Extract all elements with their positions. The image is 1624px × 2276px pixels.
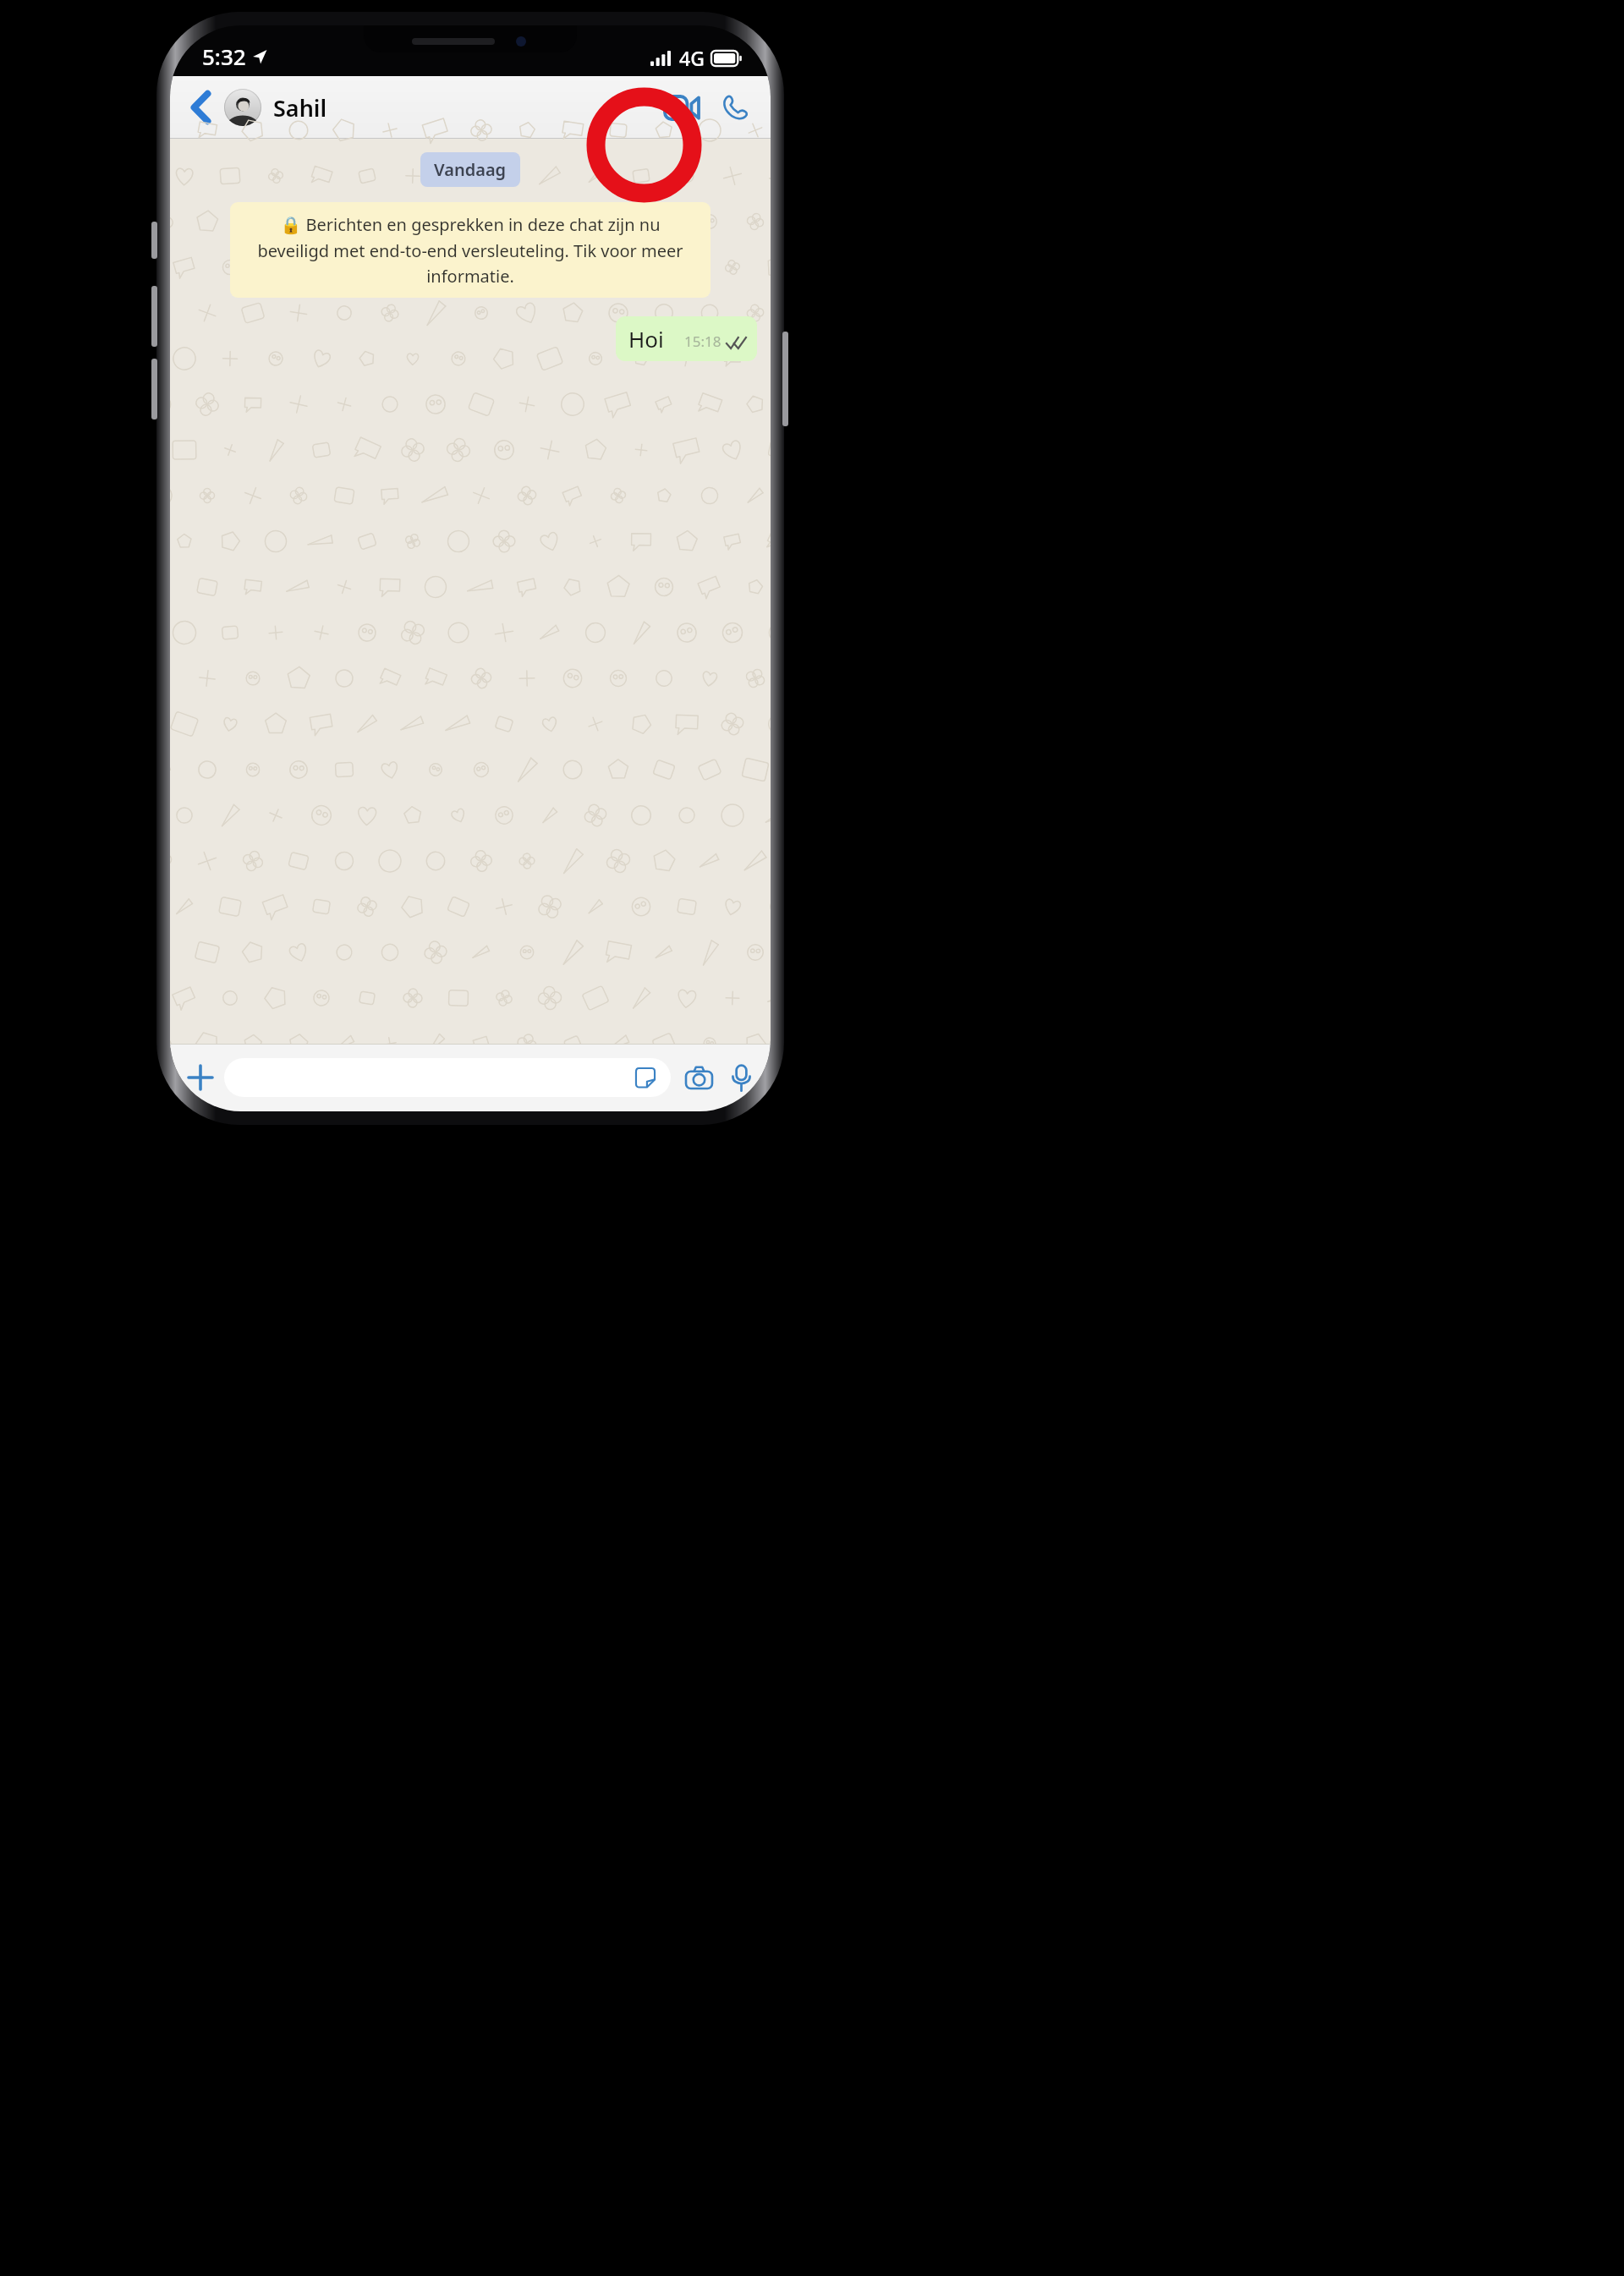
staticText: Vandaag (434, 158, 507, 181)
button[interactable]: Stickers (224, 1058, 671, 1097)
button[interactable]: Vandaag (420, 152, 520, 187)
button[interactable]: Video call (657, 83, 706, 132)
button[interactable]: Hoi (616, 316, 757, 361)
button[interactable]: Stickers (630, 1062, 661, 1093)
staticText: 15:18 (684, 332, 721, 351)
staticText: 4G (679, 45, 705, 71)
staticText: Hoi (628, 324, 664, 354)
staticText: 5:32 (202, 41, 246, 71)
button[interactable]: 🔒 Berichten en gesprekken in deze chat z… (230, 202, 710, 298)
staticText: 🔒 Berichten en gesprekken in deze chat z… (245, 213, 695, 287)
staticText: Sahil (273, 92, 327, 123)
button[interactable]: Sahil (224, 76, 657, 139)
button[interactable]: Camera (679, 1058, 718, 1097)
button[interactable]: Back (182, 83, 219, 132)
button[interactable]: Voice call (713, 83, 757, 132)
button[interactable]: Attach (180, 1057, 221, 1098)
button[interactable]: Voice message (721, 1058, 760, 1097)
